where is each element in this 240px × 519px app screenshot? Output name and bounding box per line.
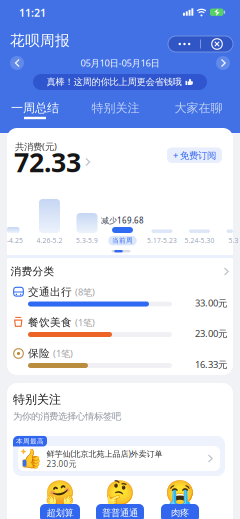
staticText: 23.00元	[195, 327, 227, 340]
button[interactable]: 😭	[152, 482, 208, 519]
button[interactable]: Previous week	[10, 56, 24, 70]
button[interactable]: Next week	[216, 56, 230, 70]
button[interactable]: More	[169, 36, 199, 52]
button[interactable]: 消费分类	[10, 265, 229, 278]
staticText: 5.24-5.30	[184, 236, 214, 245]
button[interactable]: 🤔	[92, 482, 148, 519]
staticText: 特别关注	[91, 101, 139, 115]
button[interactable]: 交通出行	[7, 286, 233, 312]
staticText: 交通出行	[28, 285, 72, 298]
staticText: 5.3-5.9	[76, 236, 98, 245]
button[interactable]: 72.33	[14, 144, 91, 180]
staticText: 😭	[165, 479, 195, 507]
staticText: 消费分类	[10, 265, 54, 278]
staticText: 🤗	[45, 479, 75, 507]
staticText: 一周总结	[11, 101, 59, 115]
staticText: 减少169.68	[101, 215, 144, 226]
staticText: (1笔)	[75, 316, 95, 329]
button[interactable]: 保险	[7, 348, 233, 374]
staticText: 普普通通	[102, 507, 138, 519]
staticText: (8笔)	[75, 286, 95, 298]
staticText: 鲜芋仙(北京北苑上品店)外卖订单	[46, 448, 162, 459]
staticText: 真棒！这周的你比上周更会省钱哦	[46, 76, 181, 88]
button[interactable]: + 免费订阅	[167, 147, 222, 163]
staticText: 05月10日-05月16日	[80, 57, 159, 69]
staticText: 超划算	[46, 507, 73, 519]
staticText: 🤔	[105, 479, 135, 507]
staticText: 共消费(元)	[15, 140, 57, 153]
button[interactable]: 餐饮美食	[7, 317, 233, 343]
staticText: 大家在聊	[174, 101, 222, 115]
staticText: 保险	[28, 347, 50, 360]
staticText: 花呗周报	[10, 31, 70, 49]
staticText: + 免费订阅	[173, 149, 216, 161]
staticText: 33.00元	[195, 297, 227, 309]
staticText: 4.26-5.2	[36, 236, 62, 245]
staticText: 👍	[19, 448, 42, 470]
staticText: 5.17-5.23	[147, 236, 177, 245]
button[interactable]: 🤗	[32, 482, 88, 519]
staticText: 本周最高	[16, 437, 44, 445]
button[interactable]: Close	[203, 36, 231, 52]
button[interactable]: 特别关注	[90, 100, 140, 116]
staticText: -4.25	[7, 236, 23, 245]
staticText: 23.00元	[46, 458, 76, 469]
button[interactable]: 大家在聊	[173, 100, 223, 116]
button[interactable]: 一周总结	[10, 100, 60, 116]
staticText: 当前周	[112, 236, 133, 245]
staticText: 16.33元	[195, 358, 227, 371]
staticText: 11:21	[19, 5, 46, 20]
staticText: 肉疼	[171, 507, 189, 519]
staticText: 为你的消费选择心情标签吧	[13, 411, 121, 422]
staticText: (1笔)	[53, 347, 73, 360]
staticText: 特别关注	[13, 392, 61, 407]
staticText: 5.3	[228, 236, 238, 245]
button[interactable]: 👍	[18, 446, 220, 471]
staticText: 餐饮美食	[28, 316, 72, 329]
staticText: 72.33	[14, 144, 81, 180]
